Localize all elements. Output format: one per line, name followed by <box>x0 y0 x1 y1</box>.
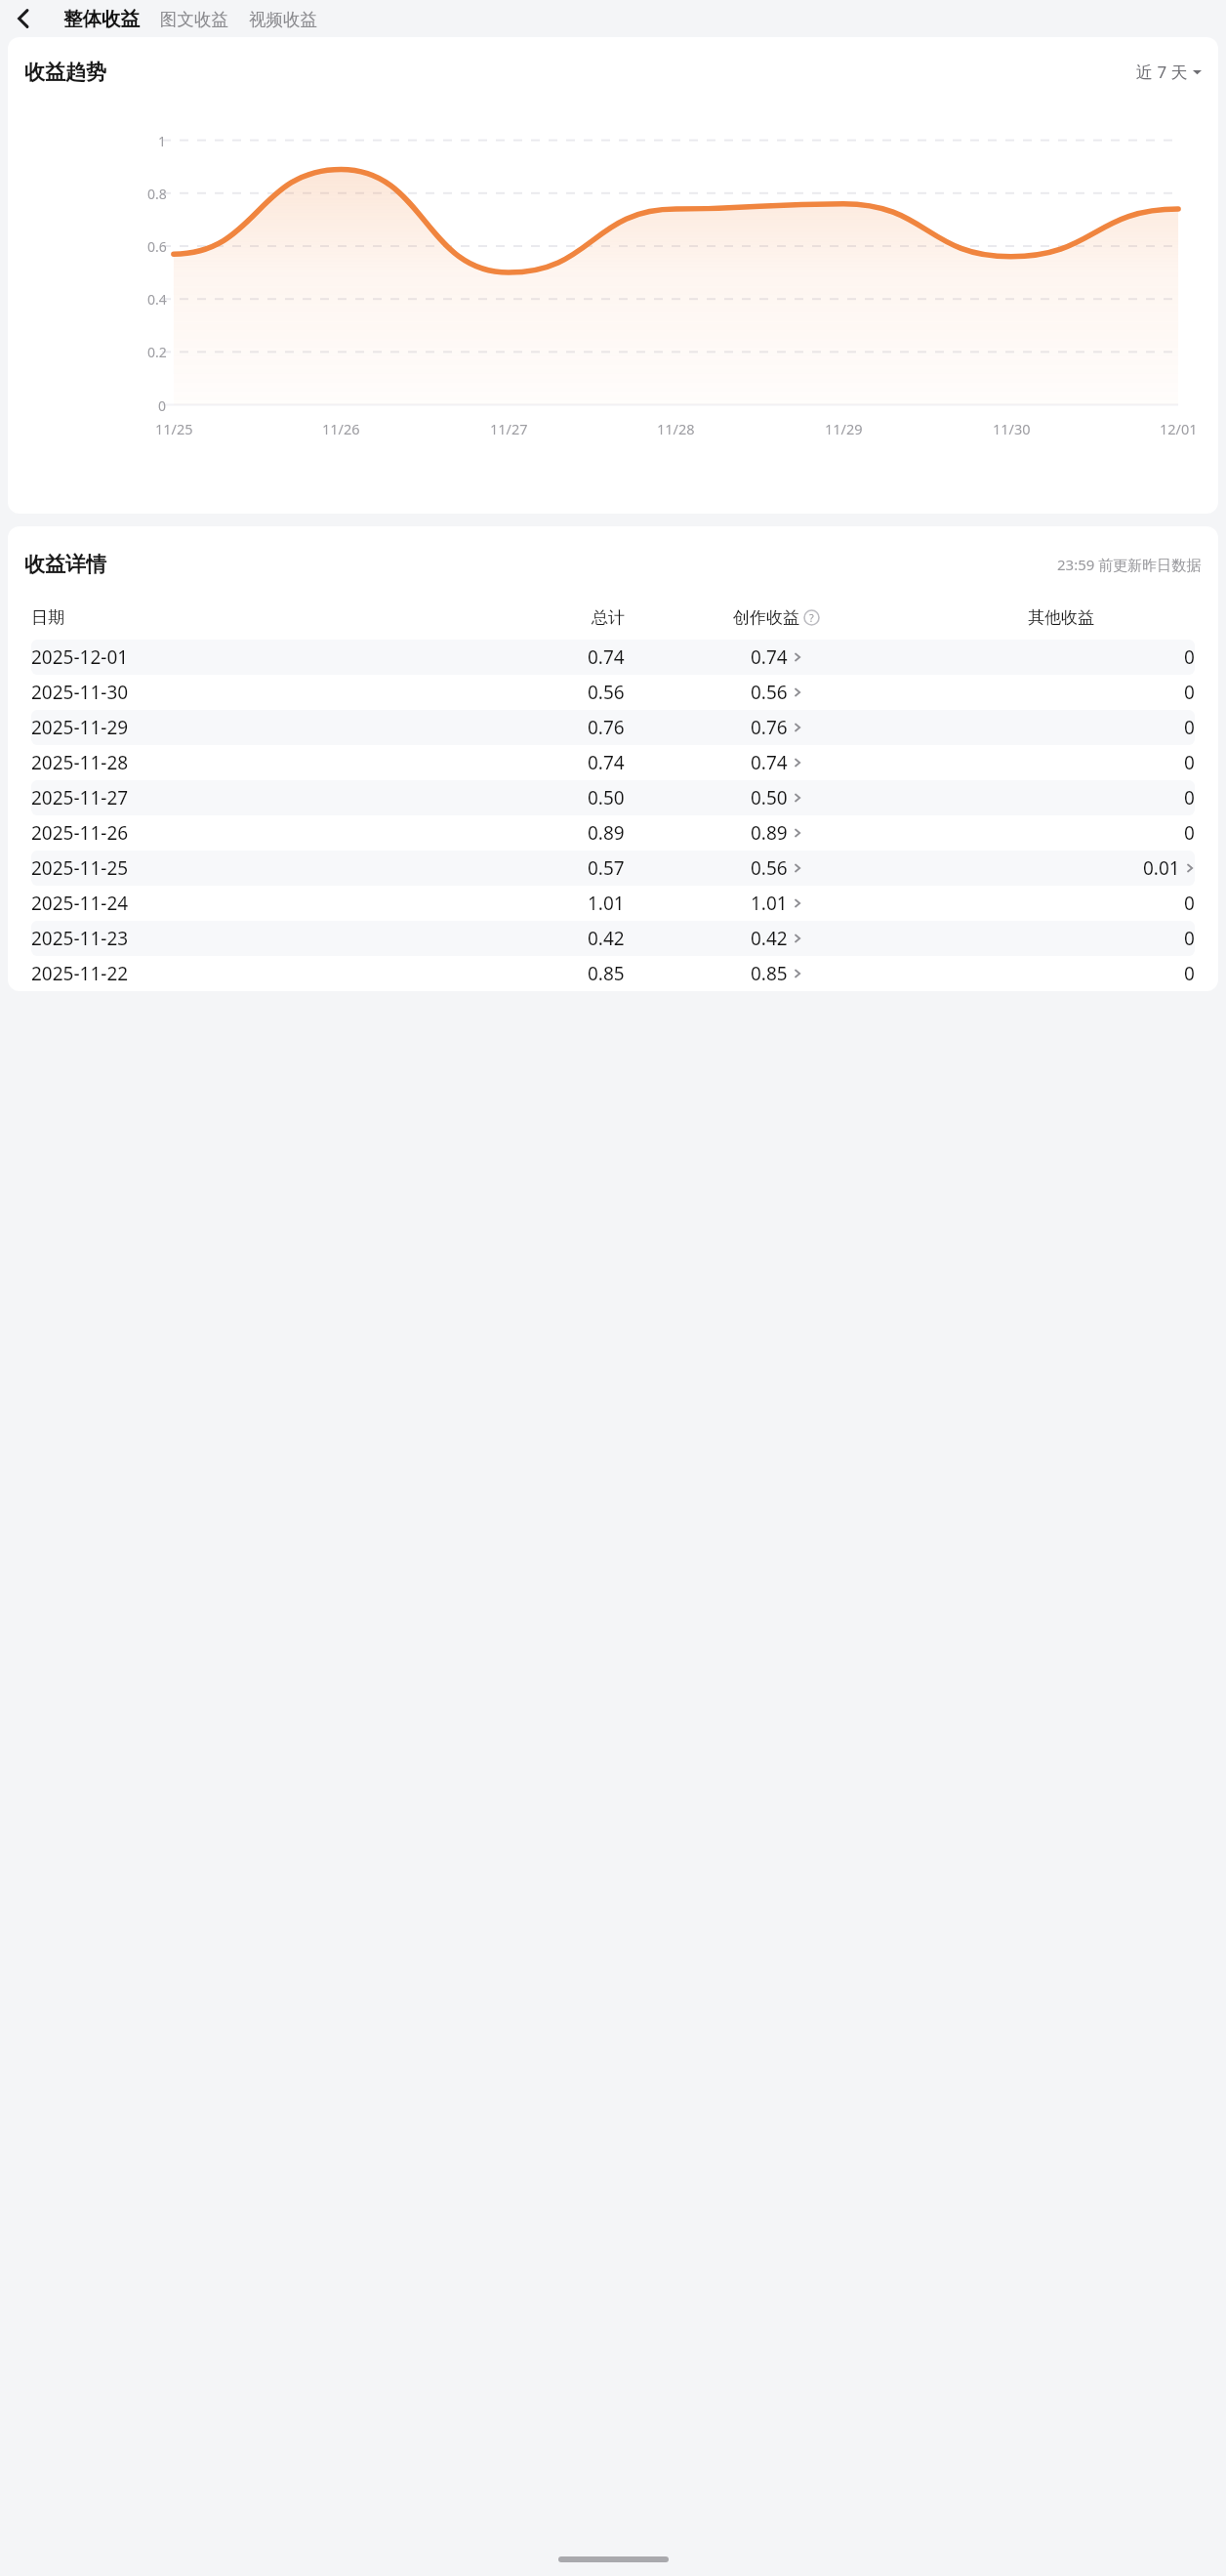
staticText: 1.01 <box>751 891 788 916</box>
staticText: 0.01 <box>1143 855 1180 881</box>
staticText: 12/01 <box>1160 419 1198 438</box>
staticText: 0.76 <box>588 715 625 740</box>
staticText: 整体收益 <box>63 7 140 31</box>
button[interactable]: Back <box>4 0 43 37</box>
staticText: 0 <box>1184 961 1195 986</box>
staticText: 2025-11-24 <box>31 891 129 916</box>
button[interactable]: 2025-11-24 <box>31 886 1195 921</box>
staticText: 2025-11-29 <box>31 715 129 740</box>
button[interactable]: 2025-11-25 <box>31 851 1195 886</box>
staticText: 0 <box>158 396 167 414</box>
staticText: 0.4 <box>147 290 167 308</box>
staticText: 0 <box>1184 715 1195 740</box>
staticText: 0 <box>1184 926 1195 951</box>
staticText: 11/27 <box>490 419 528 438</box>
button[interactable]: 图文收益 <box>157 4 231 35</box>
staticText: 总计 <box>592 607 625 628</box>
button[interactable]: 2025-11-29 <box>31 710 1195 745</box>
staticText: 0.50 <box>588 785 625 810</box>
staticText: 0.6 <box>147 237 167 255</box>
staticText: 0.85 <box>588 961 625 986</box>
staticText: 0.57 <box>588 855 625 881</box>
staticText: 0.56 <box>588 680 625 705</box>
staticText: 收益趋势 <box>24 60 106 85</box>
staticText: 0.74 <box>751 750 788 775</box>
staticText: 0.76 <box>751 715 788 740</box>
button[interactable]: 2025-11-22 <box>31 956 1195 991</box>
staticText: 其他收益 <box>1028 607 1094 628</box>
button[interactable]: 2025-12-01 <box>31 640 1195 675</box>
staticText: 收益详情 <box>24 552 106 577</box>
staticText: 2025-11-23 <box>31 926 129 951</box>
staticText: 0.74 <box>751 644 788 670</box>
button[interactable]: 2025-11-27 <box>31 780 1195 815</box>
staticText: 11/25 <box>155 419 193 438</box>
staticText: 0.50 <box>751 785 788 810</box>
staticText: 0.42 <box>588 926 625 951</box>
staticText: 0 <box>1184 785 1195 810</box>
staticText: 2025-11-26 <box>31 820 129 846</box>
button[interactable]: 整体收益 <box>61 2 143 36</box>
staticText: 2025-11-25 <box>31 855 129 881</box>
staticText: 0 <box>1184 820 1195 846</box>
staticText: 11/30 <box>993 419 1031 438</box>
staticText: 0.2 <box>147 343 167 360</box>
staticText: 11/29 <box>825 419 863 438</box>
button[interactable]: 2025-11-26 <box>31 815 1195 851</box>
staticText: 近 7 天 <box>1136 61 1188 83</box>
staticText: 日期 <box>31 607 64 628</box>
staticText: 23:59 前更新昨日数据 <box>1057 555 1202 574</box>
staticText: 0.8 <box>147 185 167 202</box>
staticText: 0.56 <box>751 855 788 881</box>
staticText: 0.74 <box>588 750 625 775</box>
staticText: 0 <box>1184 680 1195 705</box>
staticText: 0 <box>1184 891 1195 916</box>
staticText: 2025-11-22 <box>31 961 129 986</box>
staticText: 0 <box>1184 750 1195 775</box>
staticText: 0 <box>1184 644 1195 670</box>
staticText: 1 <box>158 132 167 149</box>
staticText: ? <box>809 610 814 625</box>
staticText: 0.85 <box>751 961 788 986</box>
staticText: 2025-11-27 <box>31 785 129 810</box>
staticText: 创作收益 <box>733 607 799 628</box>
staticText: 11/26 <box>322 419 360 438</box>
button[interactable]: 近 7 天 <box>1132 57 1206 87</box>
staticText: 0.42 <box>751 926 788 951</box>
staticText: 2025-11-28 <box>31 750 129 775</box>
staticText: 0.89 <box>588 820 625 846</box>
staticText: 2025-11-30 <box>31 680 129 705</box>
button[interactable]: 2025-11-28 <box>31 745 1195 780</box>
staticText: 0.89 <box>751 820 788 846</box>
staticText: 视频收益 <box>249 9 317 30</box>
staticText: 2025-12-01 <box>31 644 129 670</box>
staticText: 1.01 <box>588 891 625 916</box>
staticText: 11/28 <box>657 419 695 438</box>
staticText: 0.74 <box>588 644 625 670</box>
button[interactable]: Help <box>803 609 820 626</box>
button[interactable]: 视频收益 <box>246 4 320 35</box>
button[interactable]: 2025-11-23 <box>31 921 1195 956</box>
staticText: 图文收益 <box>160 9 228 30</box>
button[interactable]: 2025-11-30 <box>31 675 1195 710</box>
staticText: 0.56 <box>751 680 788 705</box>
